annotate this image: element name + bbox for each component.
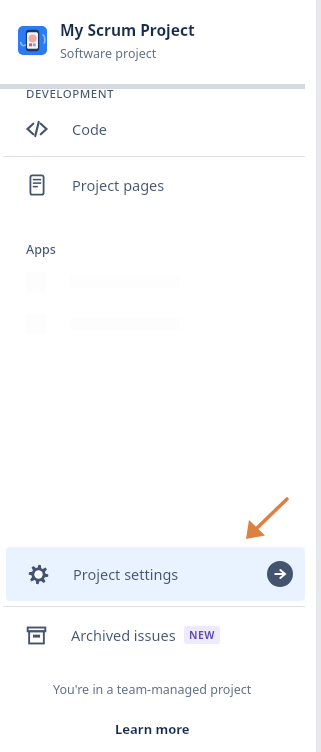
button[interactable]: Project settings [6, 547, 305, 601]
button[interactable]: Learn more [111, 716, 194, 742]
staticText: Project settings [73, 564, 179, 584]
staticText: NEW [189, 628, 215, 642]
staticText: Project pages [72, 175, 165, 195]
staticText: You're in a team-managed project [53, 681, 252, 698]
staticText: Apps [26, 241, 56, 258]
staticText: Learn more [115, 720, 190, 738]
button[interactable]: Project pages [0, 157, 321, 213]
staticText: Software project [60, 45, 157, 62]
button[interactable]: Open project settings [267, 561, 293, 587]
staticText: My Scrum Project [60, 19, 195, 40]
button[interactable]: Archived issues [0, 607, 321, 663]
button[interactable]: Code [0, 102, 321, 156]
staticText: Archived issues [71, 625, 176, 645]
staticText: Code [72, 119, 108, 139]
staticText: DEVELOPMENT [26, 86, 115, 102]
button[interactable]: My Scrum Project [0, 0, 321, 80]
